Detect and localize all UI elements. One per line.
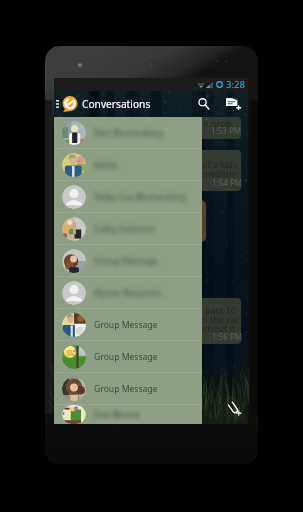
staticText: Alyson Benjamin <box>94 287 162 299</box>
staticText: Group Message <box>94 255 158 267</box>
button[interactable]: Group Message <box>54 341 202 373</box>
button[interactable]: Group Message <box>54 373 202 405</box>
button[interactable]: New message <box>218 91 248 116</box>
staticText: n the car <box>202 313 240 325</box>
staticText: 1:54 PM <box>212 177 243 188</box>
staticText: 1:56 PM <box>212 331 243 342</box>
button[interactable]: Cathy Solomon <box>54 213 202 245</box>
button[interactable]: Attach <box>226 400 242 416</box>
button[interactable]: Group Message <box>54 309 202 341</box>
staticText: of a kids <box>202 158 238 170</box>
staticText: Group Message <box>94 319 158 331</box>
staticText: Group Message <box>94 383 158 395</box>
staticText: 1:53 PM <box>211 125 242 136</box>
staticText: ithout it <box>202 322 236 334</box>
button[interactable]: Don Blumenberg <box>54 117 202 149</box>
button[interactable]: Talley Cox Blumenberg <box>54 181 202 213</box>
staticText: Group Message <box>94 351 158 363</box>
staticText: Cathy Solomon <box>94 223 156 235</box>
staticText: Talley Cox Blumenberg <box>94 191 187 203</box>
button[interactable]: Adam <box>54 149 202 181</box>
button[interactable]: Group Message <box>54 245 202 277</box>
button[interactable]: Alyson Benjamin <box>54 277 202 309</box>
staticText: past 10 <box>205 304 236 316</box>
button[interactable]: Open navigation drawer <box>54 91 61 116</box>
staticText: medium <box>202 167 238 179</box>
staticText: 3:28 <box>226 78 246 91</box>
staticText: Adam <box>94 159 118 171</box>
button[interactable]: Don Blume <box>54 405 202 424</box>
staticText: Don Blume <box>94 409 140 421</box>
staticText: Conversations <box>82 97 151 111</box>
staticText: o grow. <box>203 117 235 129</box>
staticText: Don Blumenberg <box>94 127 164 139</box>
button[interactable]: Search <box>190 91 218 116</box>
